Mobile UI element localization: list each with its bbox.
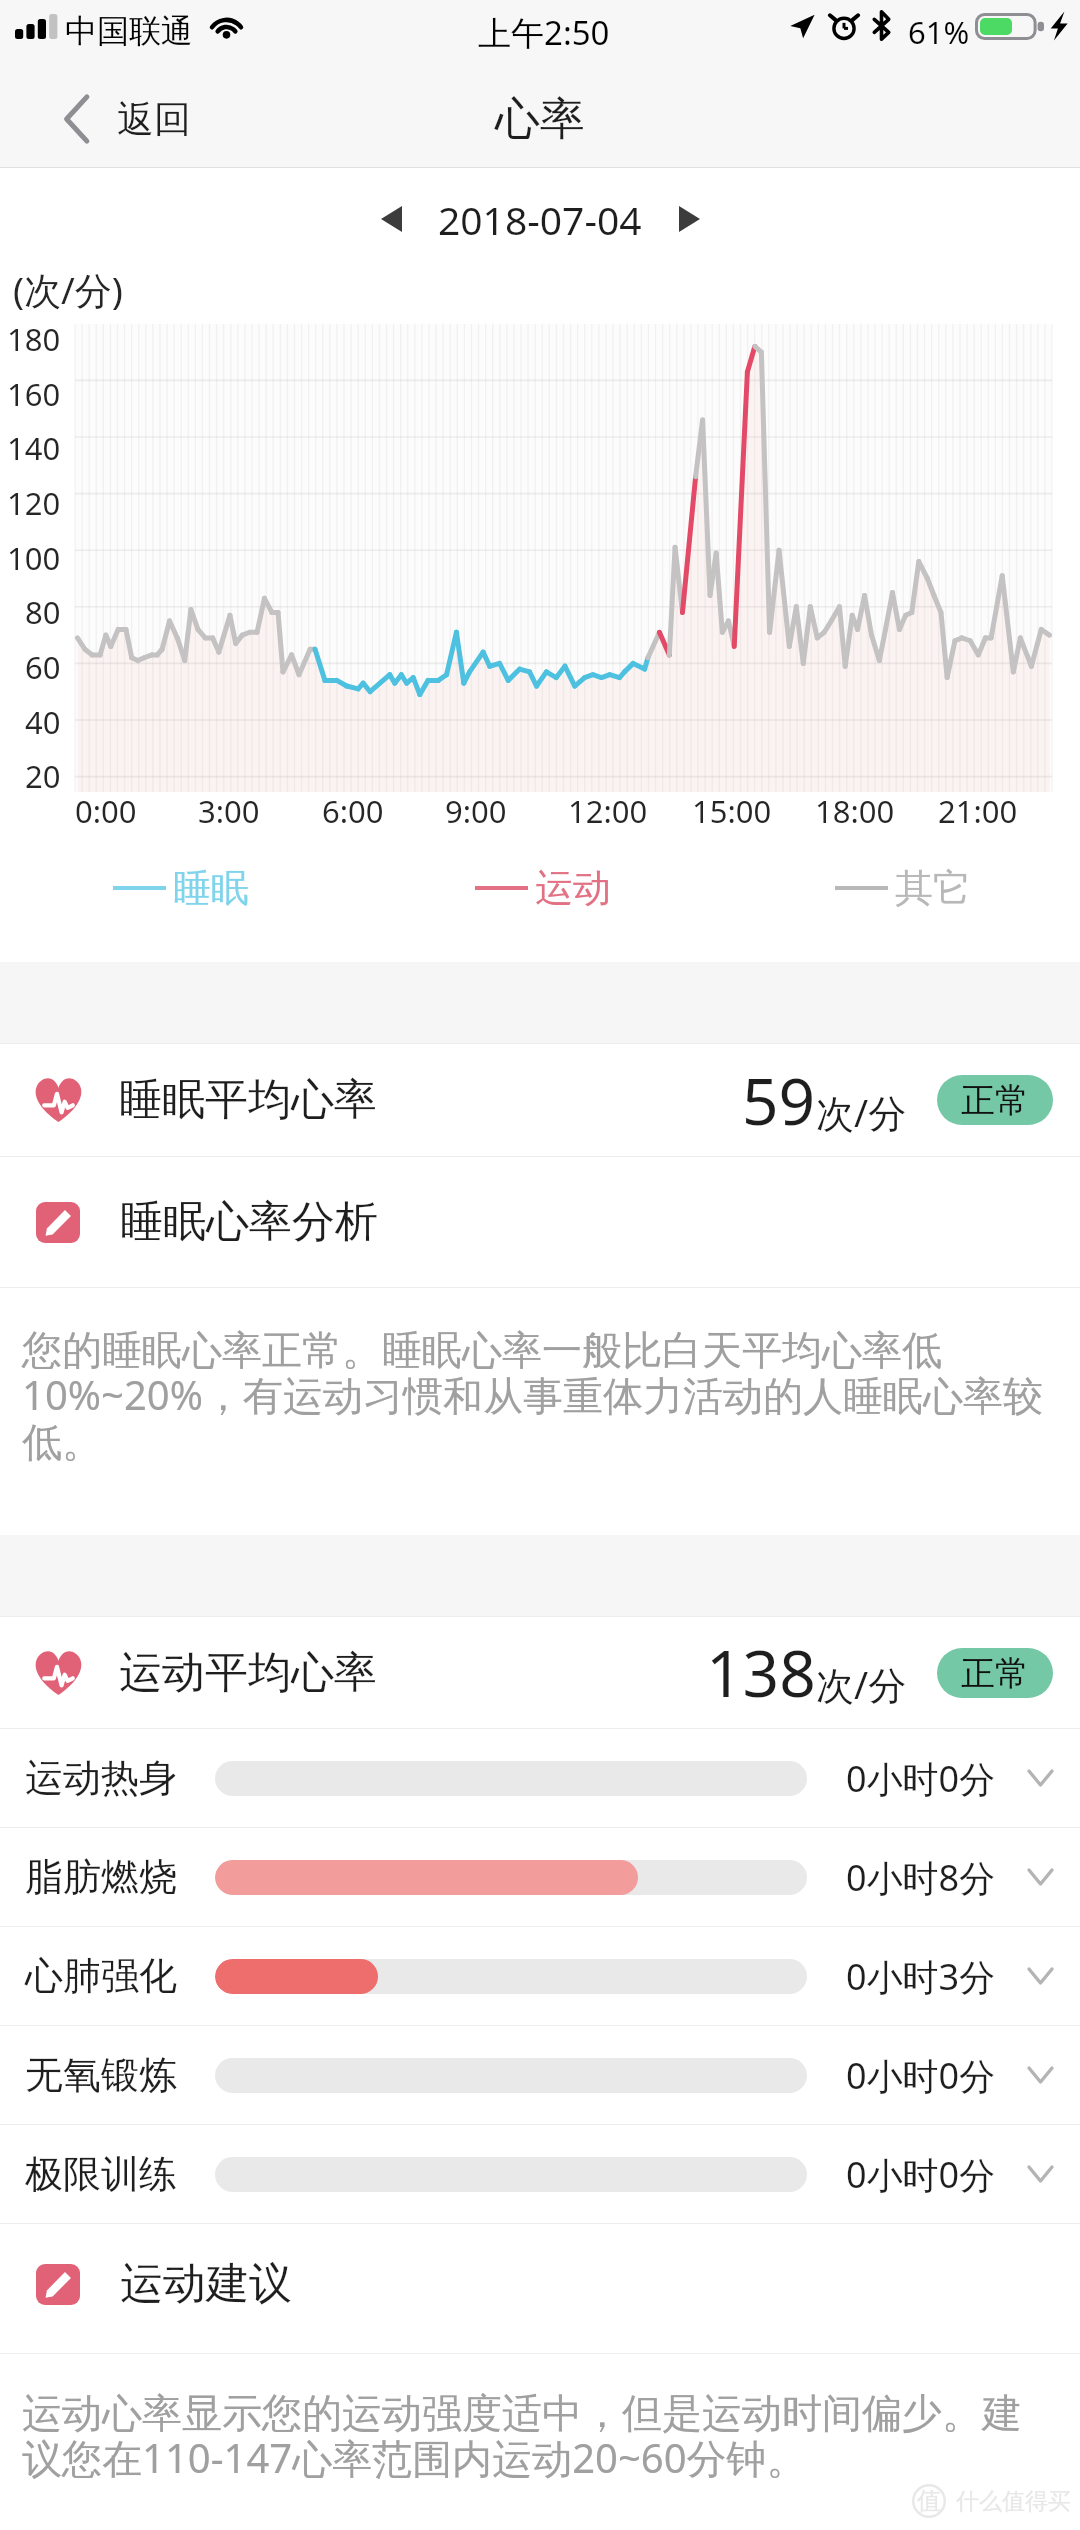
button[interactable]: 运动建议 <box>0 2215 1080 2353</box>
staticText: 心率 <box>495 91 585 148</box>
button[interactable]: 返回 <box>0 70 270 168</box>
staticText: 160 <box>7 373 61 415</box>
staticText: 运动热身 <box>25 1754 177 1802</box>
staticText: 0小时0分 <box>846 2150 996 2199</box>
button[interactable]: 睡眠 <box>113 855 249 921</box>
button[interactable]: Next day <box>656 181 722 257</box>
staticText: 次/分 <box>816 1086 907 1138</box>
button[interactable]: 运动 <box>475 855 611 921</box>
staticText: 0小时0分 <box>846 1754 996 1803</box>
staticText: 返回 <box>117 96 191 143</box>
staticText: 9:00 <box>445 790 507 832</box>
staticText: 12:00 <box>568 790 648 832</box>
staticText: 运动心率显示您的运动强度适中，但是运动时间偏少。建 议您在110-147心率范围… <box>22 2388 1022 2485</box>
staticText: 2018-07-04 <box>438 193 642 246</box>
staticText: 60 <box>25 646 61 688</box>
staticText: 值 <box>917 2486 941 2516</box>
button[interactable]: 脂肪燃烧 <box>0 1828 1080 1926</box>
button[interactable]: 睡眠平均心率 <box>0 1044 1080 1156</box>
staticText: 140 <box>7 427 61 469</box>
button[interactable]: 无氧锻炼 <box>0 2026 1080 2124</box>
button[interactable]: 运动热身 <box>0 1729 1080 1827</box>
staticText: (次/分) <box>13 264 123 315</box>
staticText: 极限训练 <box>25 2150 177 2198</box>
staticText: 正常 <box>961 1652 1029 1695</box>
staticText: 脂肪燃烧 <box>25 1853 177 1901</box>
staticText: 0:00 <box>75 790 137 832</box>
staticText: 睡眠 <box>173 864 249 912</box>
staticText: 运动平均心率 <box>119 1646 377 1700</box>
staticText: 其它 <box>895 864 971 912</box>
staticText: 0小时3分 <box>846 1952 996 2001</box>
button[interactable]: 运动平均心率 <box>0 1617 1080 1728</box>
button[interactable]: 睡眠心率分析 <box>0 1157 1080 1287</box>
staticText: 运动建议 <box>120 2257 292 2311</box>
staticText: 次/分 <box>816 1658 907 1710</box>
staticText: 59 <box>742 1057 816 1144</box>
button[interactable]: Previous day <box>358 181 424 257</box>
staticText: 138 <box>706 1629 816 1716</box>
staticText: 上午2:50 <box>478 10 610 55</box>
staticText: 40 <box>25 701 61 743</box>
button[interactable]: 其它 <box>835 855 971 921</box>
staticText: 睡眠心率分析 <box>120 1195 378 1249</box>
staticText: 80 <box>25 591 61 633</box>
button[interactable]: 极限训练 <box>0 2125 1080 2223</box>
staticText: 睡眠平均心率 <box>119 1073 377 1127</box>
staticText: 21:00 <box>938 790 1018 832</box>
staticText: 100 <box>7 537 61 579</box>
staticText: 0小时0分 <box>846 2051 996 2100</box>
staticText: 中国联通 <box>65 11 193 51</box>
staticText: 心肺强化 <box>25 1952 177 2000</box>
staticText: 61% <box>908 11 970 53</box>
staticText: 18:00 <box>815 790 895 832</box>
staticText: 0小时8分 <box>846 1853 996 1902</box>
staticText: 什么值得买 <box>956 2487 1071 2516</box>
staticText: 您的睡眠心率正常。睡眠心率一般比白天平均心率低 10%~20%，有运动习惯和从事… <box>22 1325 1043 1467</box>
staticText: 无氧锻炼 <box>25 2051 177 2099</box>
button[interactable]: 心肺强化 <box>0 1927 1080 2025</box>
staticText: 6:00 <box>322 790 384 832</box>
staticText: 3:00 <box>198 790 260 832</box>
staticText: 正常 <box>961 1079 1029 1122</box>
staticText: 20 <box>25 755 61 797</box>
staticText: 运动 <box>535 864 611 912</box>
staticText: 180 <box>7 318 61 360</box>
staticText: 15:00 <box>692 790 772 832</box>
staticText: 120 <box>7 482 61 524</box>
